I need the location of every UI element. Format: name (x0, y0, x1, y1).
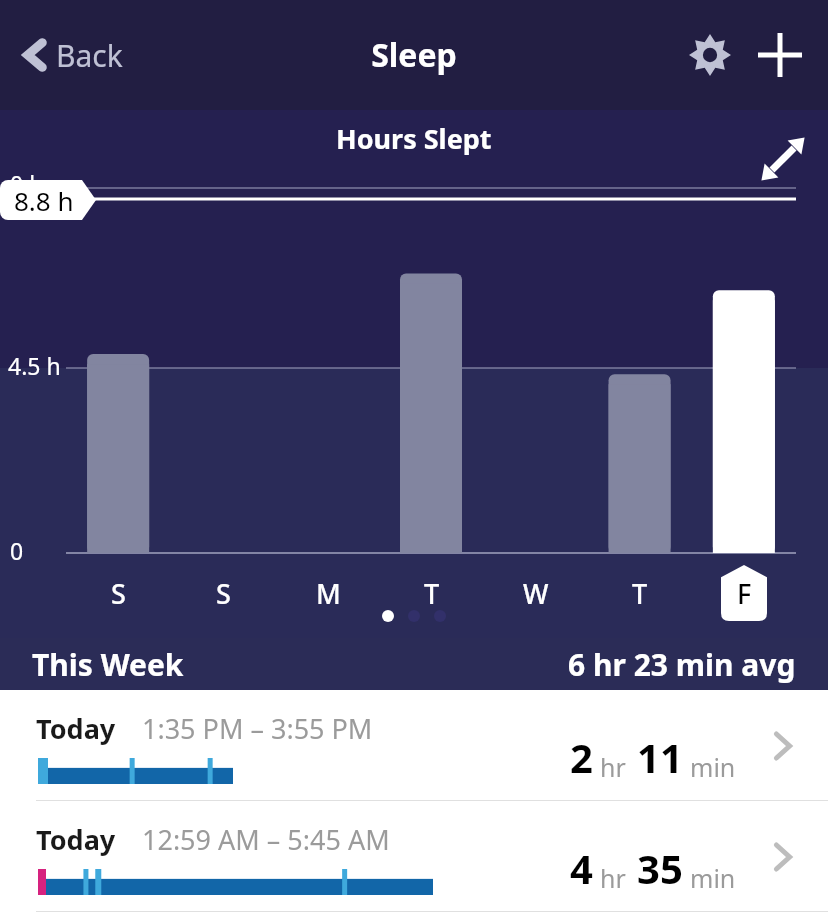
button[interactable]: Settings (680, 25, 740, 85)
button[interactable]: W (484, 565, 588, 621)
staticText: S (111, 575, 126, 612)
button[interactable]: This Week (0, 638, 828, 690)
button[interactable]: F (692, 565, 796, 621)
button[interactable]: Add (750, 25, 810, 85)
staticText: 4.5 h (8, 350, 61, 381)
button[interactable]: S (171, 565, 276, 621)
staticText: Sleep (371, 33, 457, 77)
staticText: Today (36, 821, 116, 858)
button[interactable]: S (66, 565, 171, 621)
staticText: min (690, 750, 736, 784)
staticText: M (316, 575, 341, 612)
staticText: 4 (570, 841, 593, 895)
button[interactable]: T (380, 565, 484, 621)
staticText: Today (36, 710, 116, 747)
button[interactable]: Expand chart (752, 128, 814, 190)
staticText: Hours Slept (336, 120, 492, 157)
staticText: 6 hr 23 min avg (568, 644, 796, 685)
button[interactable]: Today (0, 801, 828, 912)
staticText: 12:59 AM – 5:45 AM (142, 821, 390, 858)
staticText: T (632, 575, 648, 612)
button[interactable]: T (588, 565, 692, 621)
staticText: 2 (570, 730, 593, 784)
staticText: min (690, 861, 736, 895)
staticText: Back (56, 35, 123, 76)
staticText: hr (600, 750, 626, 784)
staticText: W (523, 575, 549, 612)
button[interactable]: Back (16, 25, 129, 85)
staticText: 8.8 h (14, 183, 74, 218)
staticText: S (216, 575, 231, 612)
button[interactable]: Today (0, 690, 828, 801)
staticText: 35 (637, 841, 683, 895)
button[interactable]: M (276, 565, 380, 621)
staticText: This Week (32, 644, 184, 685)
staticText: T (424, 575, 440, 612)
staticText: 1:35 PM – 3:55 PM (142, 710, 373, 747)
staticText: F (737, 575, 752, 612)
staticText: 0 h (10, 168, 44, 199)
staticText: 0 (10, 535, 24, 566)
staticText: hr (600, 861, 626, 895)
staticText: 11 (637, 730, 683, 784)
